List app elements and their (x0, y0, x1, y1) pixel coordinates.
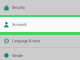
staticText: Language & input (12, 39, 40, 43)
staticText: Accounts (12, 22, 27, 26)
button[interactable]: Google (0, 48, 80, 60)
staticText: Security (12, 5, 25, 9)
button[interactable]: Accounts (0, 17, 80, 32)
button[interactable]: Security (0, 0, 80, 15)
staticText: Google (12, 53, 23, 57)
button[interactable]: Language & input (0, 35, 80, 47)
